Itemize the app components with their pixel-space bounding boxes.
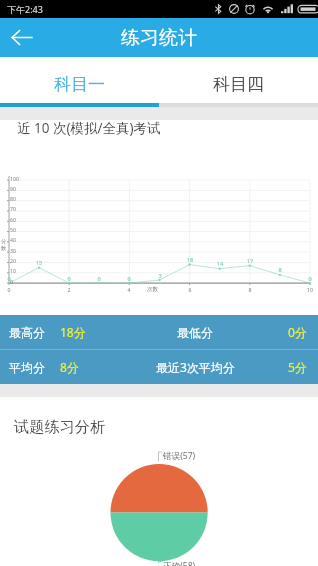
staticText: 0分 [288,324,307,340]
button[interactable]: 平均分 [0,350,159,384]
staticText: 正确(58) [163,560,196,566]
staticText: 0 [1,286,17,293]
button[interactable]: 科目四 [159,57,318,103]
staticText: 18 [182,256,198,264]
staticText: 50 [10,226,16,233]
staticText: 60 [10,216,16,223]
staticText: 10 [10,267,16,274]
staticText: 科目四 [213,74,264,95]
staticText: 100 [10,175,19,182]
staticText: 次数 [147,286,159,293]
staticText: 0 [61,275,77,283]
staticText: 0 [91,275,107,283]
staticText: 8分 [60,359,79,375]
staticText: 0 [1,275,17,283]
staticText: 14 [212,260,228,268]
staticText: 科目一 [54,74,105,95]
button[interactable]: 科目一 [0,57,159,103]
staticText: 15 [31,259,47,267]
staticText: 0 [10,278,13,285]
staticText: 8 [272,266,288,274]
staticText: 0 [121,275,137,283]
staticText: 平均分 [9,360,45,375]
staticText: 最近3次平均分 [156,359,235,375]
staticText: 数 [1,245,7,252]
staticText: 18分 [60,324,86,340]
button[interactable]: 最高分 [0,315,159,349]
staticText: 3 [152,272,168,280]
staticText: 40 [10,236,16,243]
staticText: 最低分 [177,325,213,340]
staticText: 17 [242,257,258,265]
staticText: 90 [10,185,16,192]
staticText: 5分 [288,359,307,375]
staticText: 30 [10,247,16,254]
staticText: 10 [302,286,318,293]
staticText: 近 10 次(模拟/全真)考试 [17,119,161,137]
staticText: 2 [61,286,77,293]
staticText: 错误(57) [163,450,196,462]
staticText: 20 [10,257,16,264]
button[interactable]: Back [0,18,42,57]
button[interactable]: 最低分 [159,315,318,349]
staticText: 试题练习分析 [14,417,106,436]
staticText: 最高分 [9,325,45,340]
staticText: 分 [1,238,7,245]
staticText: 0 [302,275,318,283]
staticText: 8 [242,286,258,293]
staticText: 4 [121,286,137,293]
staticText: 70 [10,205,16,212]
staticText: 练习统计 [121,26,197,50]
button[interactable]: 最近3次平均分 [159,350,318,384]
staticText: 80 [10,195,16,202]
staticText: 6 [182,286,198,293]
staticText: 下午2:43 [7,3,43,15]
